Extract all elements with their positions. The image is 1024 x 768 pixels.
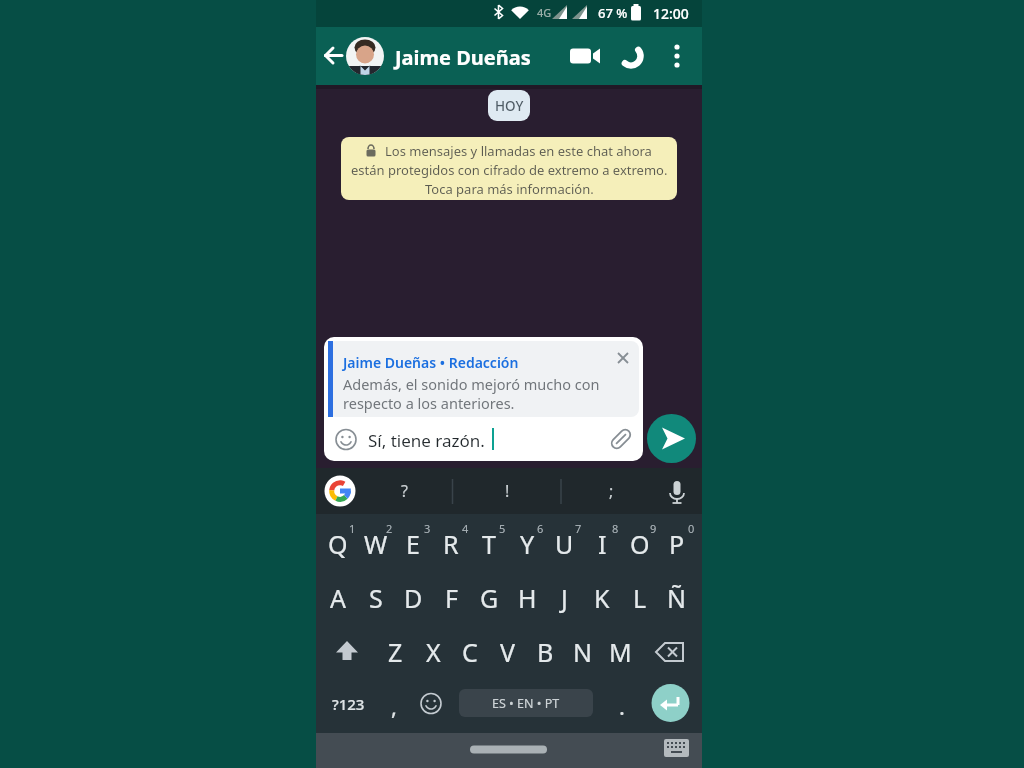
staticText: A	[330, 581, 346, 615]
staticText: Ñ	[667, 581, 687, 615]
staticText: HOY	[495, 97, 524, 115]
staticText: G	[480, 581, 499, 615]
staticText: E	[406, 527, 420, 561]
staticText: T	[482, 527, 496, 561]
staticText: ;	[609, 480, 614, 502]
staticText: Y	[520, 527, 535, 561]
staticText: .	[619, 691, 625, 721]
staticText: !	[505, 480, 510, 502]
staticText: Z	[388, 635, 403, 669]
staticText: ?123	[332, 694, 365, 714]
staticText: 1	[349, 521, 356, 536]
staticText: Además, el sonido mejoró mucho con	[343, 374, 600, 394]
staticText: W	[364, 527, 388, 561]
staticText: Q	[328, 527, 348, 561]
staticText: U	[555, 527, 574, 561]
staticText: 4G	[537, 5, 552, 20]
staticText: V	[500, 635, 516, 669]
staticText: ?	[401, 480, 408, 502]
staticText: 2	[386, 521, 393, 536]
staticText: F	[445, 581, 458, 615]
staticText: 67 %	[598, 4, 628, 22]
staticText: X	[426, 635, 441, 669]
staticText: respecto a los anteriores.	[343, 393, 515, 413]
staticText: M	[609, 635, 632, 669]
staticText: L	[633, 581, 647, 615]
staticText: O	[630, 527, 650, 561]
staticText: 8	[612, 521, 619, 536]
staticText: R	[443, 527, 459, 561]
staticText: 12:00	[653, 4, 689, 23]
staticText: 5	[499, 521, 506, 536]
staticText: 7	[575, 521, 582, 536]
staticText: 4	[462, 521, 469, 536]
staticText: 3	[424, 521, 431, 536]
staticText: I	[598, 527, 607, 561]
staticText: 6	[537, 521, 544, 536]
staticText: C	[462, 635, 478, 669]
staticText: N	[573, 635, 593, 669]
staticText: P	[669, 527, 685, 561]
staticText: 9	[650, 521, 657, 536]
staticText: D	[404, 581, 423, 615]
staticText: Jaime Dueñas • Redacción	[343, 353, 519, 372]
staticText: están protegidos con cifrado de extremo …	[351, 161, 668, 179]
staticText: Los mensajes y llamadas en este chat aho…	[385, 142, 652, 160]
staticText: K	[594, 581, 610, 615]
staticText: S	[369, 581, 383, 615]
staticText: Sí, tiene razón.	[368, 429, 485, 452]
staticText: ,	[391, 691, 397, 721]
staticText: J	[561, 581, 568, 615]
staticText: B	[537, 635, 554, 669]
staticText: H	[518, 581, 537, 615]
staticText: Toca para más información.	[425, 180, 594, 198]
staticText: 0	[688, 521, 695, 536]
staticText: Jaime Dueñas	[395, 44, 531, 71]
staticText: ES • EN • PT	[492, 695, 560, 712]
